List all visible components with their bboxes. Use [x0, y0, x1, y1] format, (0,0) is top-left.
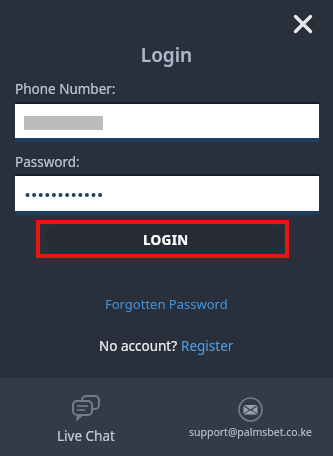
- button[interactable]: support@palmsbet.co.ke: [175, 397, 325, 439]
- staticText: No account?: [99, 337, 181, 355]
- staticText: Login: [0, 42, 333, 68]
- staticText: LOGIN: [143, 231, 189, 249]
- staticText: Register: [181, 337, 234, 355]
- staticText: Live Chat: [57, 427, 115, 445]
- staticText: support@palmsbet.co.ke: [189, 425, 312, 439]
- button[interactable]: Register: [181, 337, 234, 355]
- button[interactable]: [289, 10, 317, 38]
- button[interactable]: Forgotten Password: [105, 295, 228, 313]
- staticText: Phone Number:: [15, 80, 116, 98]
- staticText: Password:: [15, 153, 80, 171]
- button[interactable]: Live Chat: [46, 395, 126, 445]
- button[interactable]: LOGIN: [46, 225, 285, 253]
- staticText: Forgotten Password: [105, 295, 228, 313]
